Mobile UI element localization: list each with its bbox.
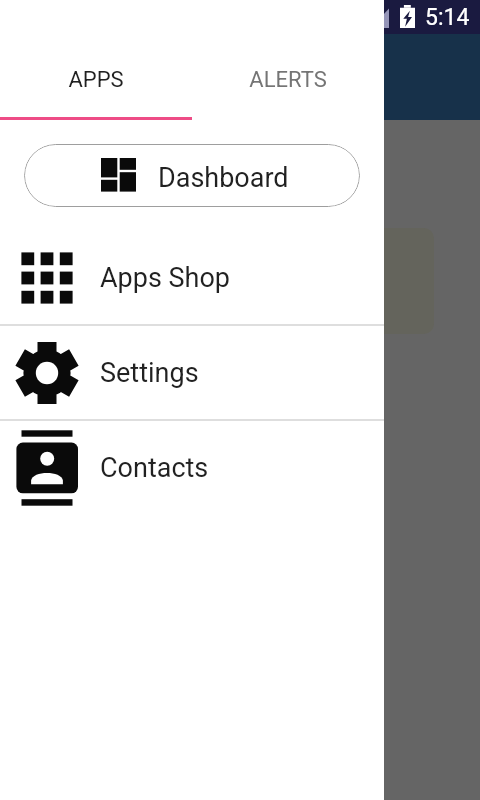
staticText: APPS <box>68 67 124 93</box>
staticText: Settings <box>100 357 199 389</box>
staticText: Dashboard <box>158 162 289 194</box>
button[interactable]: Settings <box>0 326 384 419</box>
button[interactable]: Dashboard <box>24 144 360 207</box>
staticText: 5:14 <box>425 4 470 31</box>
staticText: Contacts <box>100 452 209 484</box>
staticText: ALERTS <box>249 67 327 93</box>
button[interactable]: ALERTS <box>192 39 384 120</box>
staticText: Apps Shop <box>100 262 231 294</box>
button[interactable]: Contacts <box>0 421 384 515</box>
button[interactable]: Apps Shop <box>0 231 384 324</box>
button[interactable]: Close navigation drawer <box>0 0 480 800</box>
button[interactable]: APPS <box>0 39 192 120</box>
